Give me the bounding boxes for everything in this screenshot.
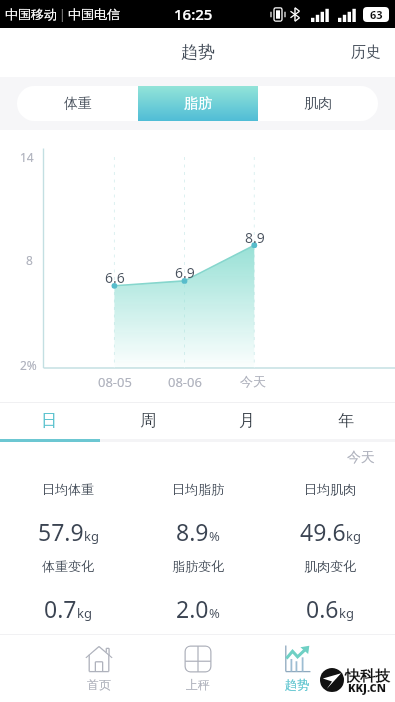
staticText: 月: [239, 411, 255, 431]
staticText: |: [59, 6, 66, 22]
staticText: 16:25: [174, 4, 213, 24]
staticText: 日: [41, 411, 57, 431]
staticText: 体重: [64, 95, 92, 113]
staticText: 0.6: [306, 593, 339, 624]
staticText: 快科技: [345, 667, 390, 686]
staticText: 肌肉: [304, 95, 332, 113]
staticText: 上秤: [186, 677, 210, 692]
staticText: %: [209, 527, 220, 545]
button[interactable]: 体重: [17, 86, 138, 121]
button[interactable]: 首页: [49, 635, 148, 702]
button[interactable]: 历史: [335, 28, 395, 77]
staticText: 首页: [87, 677, 111, 692]
staticText: 脂肪变化: [172, 558, 224, 574]
staticText: 中国移动: [5, 6, 57, 22]
staticText: 今天: [240, 373, 266, 389]
staticText: 2%: [20, 357, 37, 373]
button[interactable]: 月: [197, 403, 296, 439]
staticText: KKJ.CN: [348, 680, 386, 695]
button[interactable]: 上秤: [148, 635, 247, 702]
staticText: 8.9: [176, 516, 209, 547]
staticText: kg: [346, 527, 361, 545]
staticText: kg: [84, 527, 99, 545]
staticText: 中国电信: [68, 6, 120, 22]
staticText: 年: [338, 411, 354, 431]
staticText: 日均体重: [42, 481, 94, 497]
staticText: 14: [20, 149, 34, 165]
staticText: 趋势: [285, 677, 309, 692]
staticText: 57.9: [38, 516, 84, 547]
staticText: 2.0: [176, 593, 209, 624]
staticText: 体重变化: [42, 558, 94, 574]
staticText: 49.6: [300, 516, 346, 547]
staticText: 08-06: [168, 373, 202, 391]
button[interactable]: 日: [0, 403, 98, 439]
staticText: 6.6: [105, 268, 125, 287]
staticText: 08-05: [98, 373, 132, 391]
staticText: kg: [77, 604, 92, 622]
button[interactable]: 趋势: [247, 635, 346, 702]
staticText: 脂肪: [184, 95, 212, 113]
staticText: 6.9: [175, 263, 195, 282]
staticText: 趋势: [181, 42, 215, 63]
staticText: 历史: [351, 43, 381, 62]
button[interactable]: 年: [296, 403, 395, 439]
staticText: 0.7: [44, 593, 77, 624]
button[interactable]: 周: [98, 403, 197, 439]
staticText: kg: [339, 604, 354, 622]
staticText: 63: [370, 7, 383, 22]
staticText: 日均肌肉: [304, 481, 356, 497]
staticText: %: [209, 604, 220, 622]
staticText: 8: [26, 252, 33, 268]
button[interactable]: 脂肪: [138, 86, 258, 121]
staticText: 周: [140, 411, 156, 431]
staticText: 8.9: [245, 228, 265, 247]
button[interactable]: 肌肉: [258, 86, 378, 121]
staticText: 今天: [347, 449, 375, 467]
staticText: 日均脂肪: [172, 481, 224, 497]
staticText: 肌肉变化: [304, 558, 356, 574]
